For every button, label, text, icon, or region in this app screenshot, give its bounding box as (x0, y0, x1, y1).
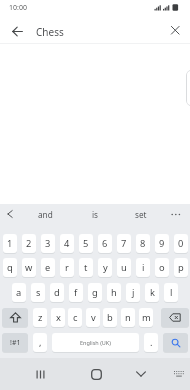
staticText: o (159, 261, 165, 274)
button[interactable]: r (60, 258, 74, 277)
button[interactable]: a (12, 283, 26, 302)
staticText: f (74, 286, 78, 299)
staticText: d (54, 286, 60, 299)
button[interactable]: e (41, 258, 55, 277)
button[interactable]: English (UK) (52, 333, 139, 352)
button[interactable]: s (31, 283, 45, 302)
staticText: , (39, 336, 42, 349)
button[interactable]: c (68, 308, 82, 327)
button[interactable]: o (155, 258, 169, 277)
button[interactable]: 8 (136, 234, 150, 253)
staticText: 1 (7, 237, 13, 250)
button[interactable]: d (50, 283, 64, 302)
button[interactable]: u (117, 258, 131, 277)
button[interactable]: b (103, 308, 117, 327)
button[interactable] (84, 362, 108, 386)
button[interactable] (163, 333, 188, 352)
staticText: a (16, 286, 22, 299)
button[interactable]: !#1 (2, 333, 28, 352)
staticText: x (56, 311, 61, 324)
button[interactable]: 6 (98, 234, 112, 253)
staticText: q (7, 261, 13, 274)
button[interactable] (129, 362, 153, 386)
button[interactable]: m (139, 308, 153, 327)
button[interactable]: k (145, 283, 159, 302)
button[interactable] (28, 362, 52, 386)
button[interactable]: 7 (117, 234, 131, 253)
button[interactable]: x (51, 308, 65, 327)
staticText: 8 (140, 237, 146, 250)
button[interactable]: . (144, 333, 158, 352)
button[interactable] (2, 205, 18, 223)
staticText: i (142, 261, 145, 274)
button[interactable]: 4 (60, 234, 74, 253)
staticText: 5 (83, 237, 89, 250)
staticText: e (45, 261, 51, 274)
staticText: 0 (178, 237, 184, 250)
staticText: set (135, 209, 147, 220)
staticText: 2 (26, 237, 32, 250)
staticText: c (73, 311, 78, 324)
button[interactable]: 9 (155, 234, 169, 253)
staticText: 4 (64, 237, 70, 250)
staticText: English (UK) (80, 339, 111, 346)
staticText: is (92, 209, 99, 220)
button[interactable] (2, 308, 28, 327)
button[interactable]: is (74, 204, 116, 224)
staticText: s (36, 286, 41, 299)
button[interactable]: f (69, 283, 83, 302)
button[interactable]: 1 (3, 234, 17, 253)
staticText: k (150, 286, 155, 299)
button[interactable]: i (136, 258, 150, 277)
button[interactable]: z (33, 308, 47, 327)
button[interactable]: y (98, 258, 112, 277)
button[interactable]: t (79, 258, 93, 277)
button[interactable]: q (3, 258, 17, 277)
staticText: 6 (102, 237, 108, 250)
staticText: 9 (159, 237, 165, 250)
button[interactable] (166, 204, 186, 224)
staticText: t (84, 261, 88, 274)
staticText: and (38, 209, 53, 220)
staticText: 7 (121, 237, 127, 250)
button[interactable]: , (33, 333, 47, 352)
staticText: z (38, 311, 43, 324)
button[interactable]: j (126, 283, 140, 302)
button[interactable]: 5 (79, 234, 93, 253)
staticText: Chess (36, 25, 64, 39)
staticText: !#1 (10, 338, 21, 348)
button[interactable] (168, 362, 190, 386)
button[interactable]: 0 (174, 234, 188, 253)
staticText: r (65, 261, 69, 274)
staticText: j (132, 286, 135, 299)
button[interactable]: 2 (22, 234, 36, 253)
button[interactable]: p (174, 258, 188, 277)
staticText: v (91, 311, 96, 324)
button[interactable]: g (88, 283, 102, 302)
button[interactable]: set (120, 204, 162, 224)
staticText: m (142, 311, 151, 324)
staticText: p (178, 261, 184, 274)
staticText: l (170, 286, 173, 299)
button[interactable]: l (164, 283, 178, 302)
staticText: 3 (45, 237, 51, 250)
button[interactable]: n (121, 308, 135, 327)
staticText: g (92, 286, 98, 299)
staticText: y (103, 261, 108, 274)
button[interactable] (166, 21, 184, 39)
staticText: w (25, 261, 33, 274)
staticText: n (125, 311, 131, 324)
staticText: 10:00 (9, 3, 27, 13)
staticText: . (150, 336, 153, 349)
button[interactable]: w (22, 258, 36, 277)
button[interactable] (161, 308, 189, 327)
button[interactable]: 3 (41, 234, 55, 253)
staticText: h (111, 286, 117, 299)
button[interactable] (6, 20, 28, 42)
button[interactable]: v (86, 308, 100, 327)
button[interactable]: h (107, 283, 121, 302)
staticText: u (121, 261, 127, 274)
staticText: b (107, 311, 113, 324)
button[interactable]: and (24, 204, 66, 224)
